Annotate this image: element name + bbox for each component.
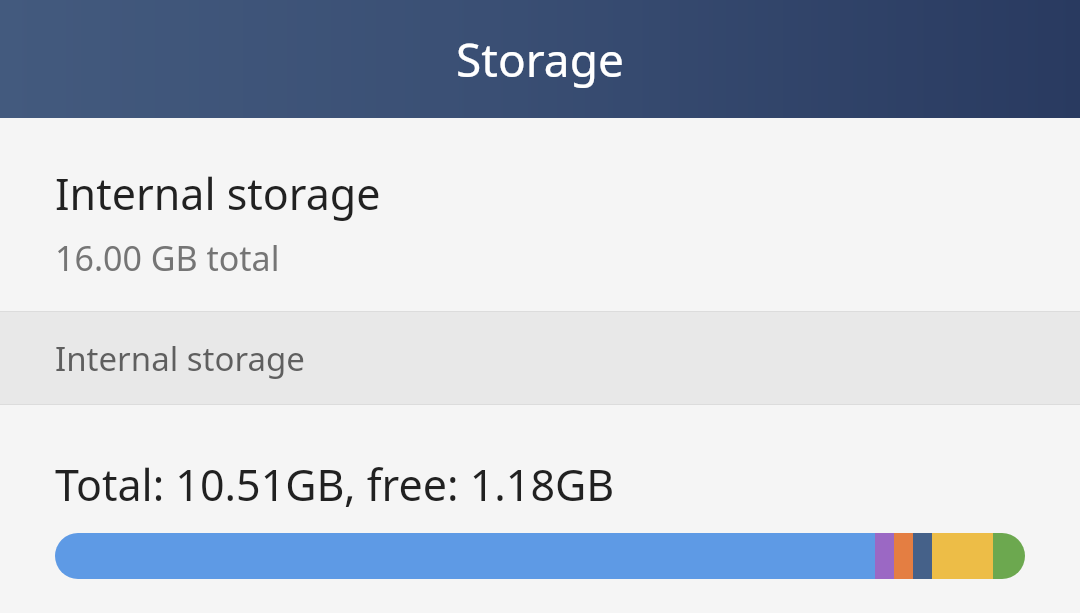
button[interactable]: Total: 10.51GB, free: 1.18GB <box>0 405 1080 613</box>
staticText: Storage <box>456 28 624 91</box>
button[interactable]: Internal storage <box>0 312 1080 404</box>
staticText: Total: 10.51GB, free: 1.18GB <box>55 455 615 514</box>
staticText: 16.00 GB total <box>55 235 280 281</box>
staticText: Internal storage <box>55 336 305 381</box>
button[interactable]: Internal storage <box>0 118 1080 311</box>
staticText: Internal storage <box>55 164 381 223</box>
